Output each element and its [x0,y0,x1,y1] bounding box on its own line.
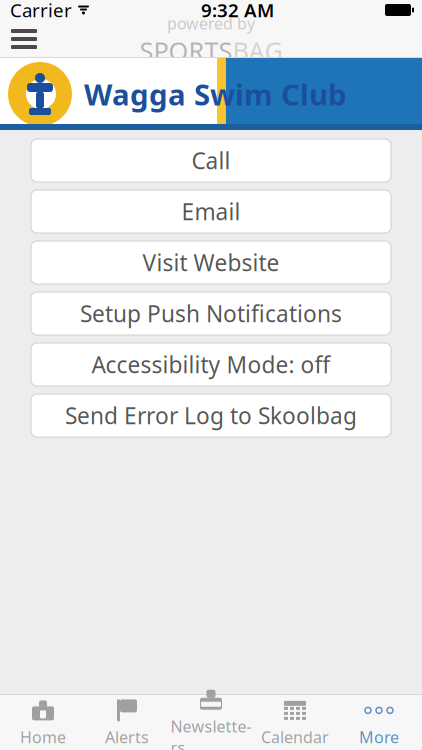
staticText: Calendar [261,726,329,748]
staticText: Call [191,145,230,175]
staticText: Home [20,726,66,748]
button[interactable]: Email [31,190,391,233]
staticText: Send Error Log to Skoolbag [65,400,357,430]
staticText: Email [181,196,240,226]
button[interactable]: Send Error Log to Skoolbag [31,394,391,437]
staticText: 9:32 AM [201,0,274,22]
staticText: BAG [232,34,282,67]
staticText: SPORTS [139,34,232,67]
button[interactable]: Calendar [253,695,337,750]
staticText: Carrier [10,0,72,22]
button[interactable]: Alerts [85,695,169,750]
staticText: powered by [167,13,255,34]
button[interactable]: Accessibility Mode: off [31,343,391,386]
staticText: Alerts [105,726,149,748]
button[interactable]: Menu [2,20,46,58]
button[interactable]: More [337,695,421,750]
button[interactable]: Visit Website [31,241,391,284]
button[interactable]: Home [1,695,85,750]
staticText: More [359,726,399,748]
button[interactable]: Call [31,139,391,182]
button[interactable]: Newsletters [169,695,253,750]
staticText: Visit Website [142,247,279,277]
staticText: Accessibility Mode: off [91,349,330,379]
staticText: Wagga Swim Club [84,74,347,113]
staticText: Setup Push Notifications [80,298,342,328]
button[interactable]: Setup Push Notifications [31,292,391,335]
staticText: Newsletters [170,716,251,750]
